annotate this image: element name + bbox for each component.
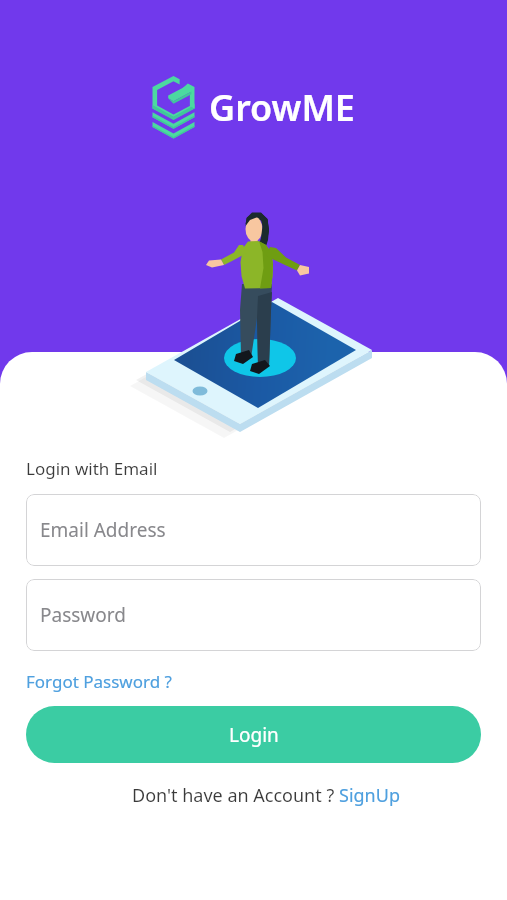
staticText: Email Address — [40, 517, 166, 543]
staticText: Don't have an Account ? — [132, 783, 339, 808]
staticText: Password — [40, 602, 126, 628]
button[interactable]: Login — [26, 706, 481, 763]
staticText: GrowME — [209, 83, 355, 132]
staticText: Login — [229, 722, 279, 748]
button[interactable]: SignUp — [339, 783, 400, 808]
button[interactable]: Forgot Password ? — [26, 670, 172, 693]
button[interactable]: Password — [26, 579, 481, 651]
staticText: Login with Email — [26, 457, 158, 480]
button[interactable]: Email Address — [26, 494, 481, 566]
